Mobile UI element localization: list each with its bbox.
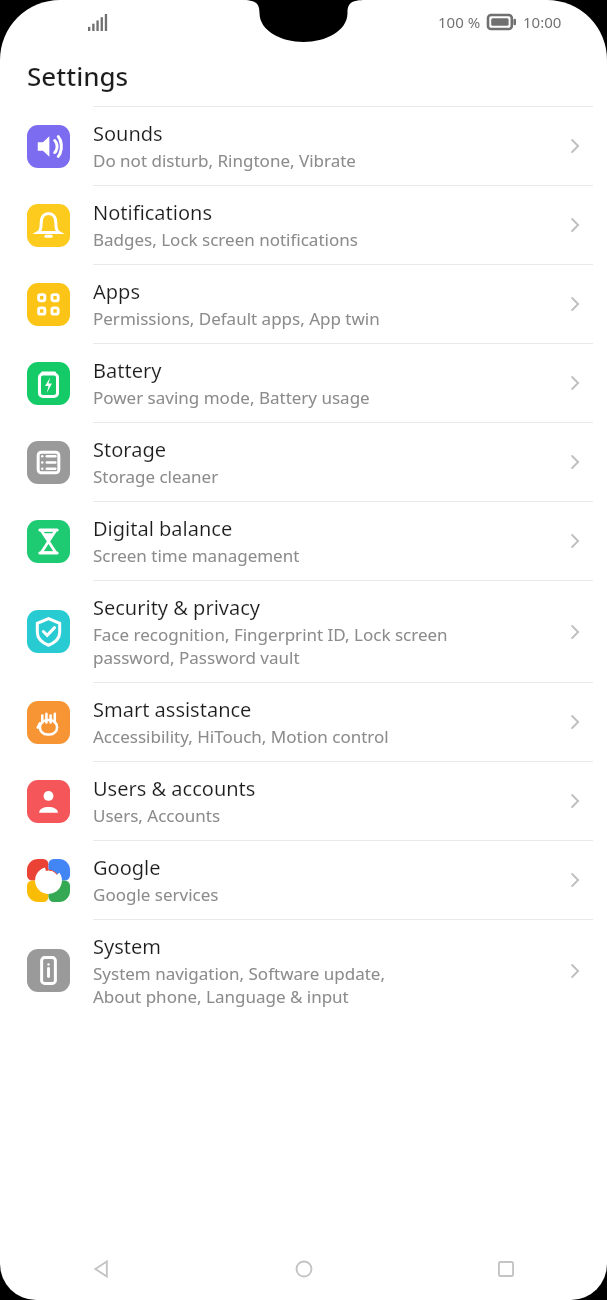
button[interactable]: Google	[0, 841, 607, 919]
staticText: Power saving mode, Battery usage	[93, 386, 370, 409]
staticText: Settings	[27, 58, 129, 93]
staticText: Screen time management	[93, 544, 300, 567]
button[interactable]: Home	[203, 1238, 405, 1300]
button[interactable]: Notifications	[0, 186, 607, 264]
staticText: System	[93, 933, 161, 960]
staticText: Notifications	[93, 199, 212, 226]
staticText: Do not disturb, Ringtone, Vibrate	[93, 149, 356, 172]
staticText: Security & privacy	[93, 594, 260, 621]
button[interactable]: Digital balance	[0, 502, 607, 580]
staticText: System navigation, Software update,	[93, 962, 385, 985]
staticText: Permissions, Default apps, App twin	[93, 307, 380, 330]
staticText: Digital balance	[93, 515, 233, 542]
staticText: password, Password vault	[93, 646, 300, 669]
staticText: 100 %	[438, 12, 481, 32]
staticText: Users & accounts	[93, 775, 256, 802]
staticText: Storage	[93, 436, 166, 463]
button[interactable]: Battery	[0, 344, 607, 422]
button[interactable]: System	[0, 920, 607, 1021]
staticText: Face recognition, Fingerprint ID, Lock s…	[93, 623, 448, 646]
button[interactable]: Smart assistance	[0, 683, 607, 761]
staticText: Google services	[93, 883, 219, 906]
button[interactable]: Sounds	[0, 107, 607, 185]
staticText: Apps	[93, 278, 140, 305]
button[interactable]: Security & privacy	[0, 581, 607, 682]
staticText: Storage cleaner	[93, 465, 219, 488]
staticText: Sounds	[93, 120, 163, 147]
button[interactable]: Apps	[0, 265, 607, 343]
button[interactable]: Recents	[405, 1238, 607, 1300]
button[interactable]: Storage	[0, 423, 607, 501]
staticText: 10:00	[523, 12, 562, 32]
staticText: Battery	[93, 357, 162, 384]
button[interactable]: Back	[0, 1238, 203, 1300]
staticText: About phone, Language & input	[93, 985, 349, 1008]
staticText: Badges, Lock screen notifications	[93, 228, 358, 251]
staticText: Accessibility, HiTouch, Motion control	[93, 725, 389, 748]
staticText: Google	[93, 854, 161, 881]
button[interactable]: Users & accounts	[0, 762, 607, 840]
staticText: Users, Accounts	[93, 804, 221, 827]
staticText: Smart assistance	[93, 696, 252, 723]
